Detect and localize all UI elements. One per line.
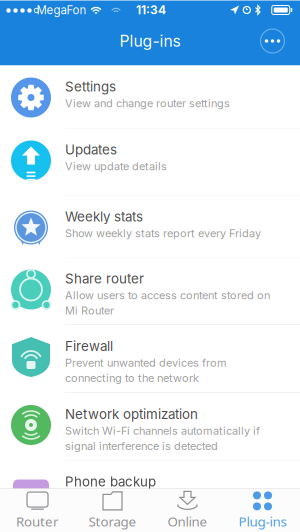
- staticText: Allow users to access content stored on: [65, 289, 270, 302]
- button[interactable]: Router: [0, 486, 75, 532]
- staticText: Switch Wi-Fi channels automatically if: [65, 424, 260, 437]
- staticText: MegaFon: [36, 3, 86, 17]
- button[interactable]: Plug-ins: [225, 486, 300, 532]
- staticText: Phone backup: [65, 473, 156, 490]
- staticText: Router: [16, 512, 59, 530]
- button[interactable]: Online: [150, 486, 225, 532]
- staticText: Prevent unwanted devices from: [65, 356, 227, 369]
- staticText: Plug-ins: [119, 31, 180, 50]
- staticText: View and change router settings: [65, 97, 230, 110]
- button[interactable]: Share router: [0, 257, 300, 324]
- staticText: signal interference is detected: [65, 439, 218, 453]
- staticText: Storage: [88, 512, 136, 530]
- staticText: Settings: [65, 78, 116, 95]
- button[interactable]: Storage: [75, 486, 150, 532]
- button[interactable]: Network optimization: [0, 393, 300, 460]
- button[interactable]: Weekly stats: [0, 195, 300, 257]
- button[interactable]: Settings: [0, 65, 300, 128]
- staticText: View update details: [65, 160, 167, 173]
- staticText: Network optimization: [65, 406, 198, 422]
- staticText: Back up photos and videos: [65, 492, 205, 505]
- staticText: Mi Router: [65, 304, 114, 317]
- staticText: 11:34: [136, 3, 166, 17]
- button[interactable]: Firewall: [0, 325, 300, 392]
- button[interactable]: Phone backup: [0, 460, 300, 526]
- staticText: Updates: [65, 141, 117, 158]
- staticText: Show weekly stats report every Friday: [65, 227, 261, 240]
- staticText: Share router: [65, 270, 144, 287]
- staticText: Firewall: [65, 338, 113, 354]
- button[interactable]: More options: [255, 24, 289, 58]
- staticText: Online: [167, 512, 207, 530]
- staticText: Weekly stats: [65, 208, 143, 225]
- button[interactable]: Updates: [0, 128, 300, 195]
- staticText: connecting to the network: [65, 371, 199, 385]
- staticText: Plug-ins: [238, 512, 286, 530]
